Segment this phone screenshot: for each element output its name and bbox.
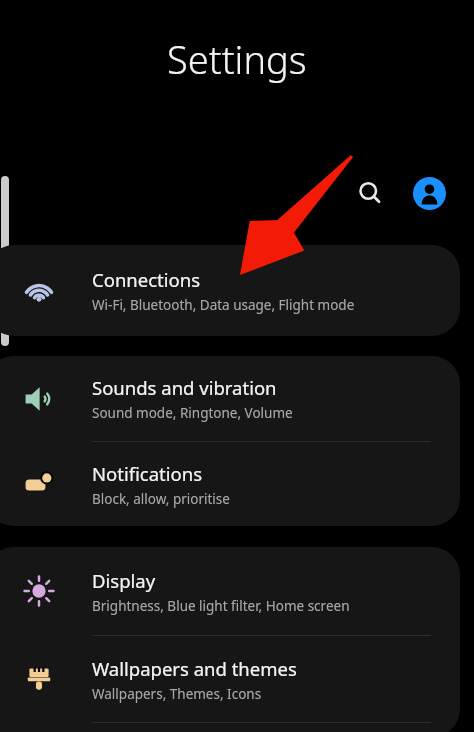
staticText: Connections xyxy=(92,267,201,292)
staticText: Notifications xyxy=(92,461,203,486)
staticText: Wi-Fi, Bluetooth, Data usage, Flight mod… xyxy=(92,296,355,314)
staticText: Block, allow, prioritise xyxy=(92,490,230,508)
staticText: Sound mode, Ringtone, Volume xyxy=(92,404,293,422)
staticText: Settings xyxy=(167,33,307,85)
staticText: Wallpapers and themes xyxy=(92,656,297,681)
staticText: Sounds and vibration xyxy=(92,375,277,400)
button[interactable]: Wallpapers and themes xyxy=(0,636,460,722)
button[interactable]: Connections xyxy=(0,245,460,336)
button[interactable]: Account xyxy=(411,175,447,211)
button[interactable]: Notifications xyxy=(0,442,460,526)
staticText: Brightness, Blue light filter, Home scre… xyxy=(92,597,350,615)
button[interactable]: Sounds and vibration xyxy=(0,356,460,441)
staticText: Display xyxy=(92,568,156,593)
button[interactable]: Display xyxy=(0,547,460,635)
staticText: Wallpapers, Themes, Icons xyxy=(92,685,262,703)
button[interactable]: Search xyxy=(351,174,389,212)
